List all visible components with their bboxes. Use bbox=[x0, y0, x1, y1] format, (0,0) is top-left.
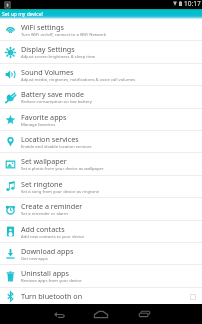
staticText: WiFi settings bbox=[21, 22, 64, 32]
staticText: Adjust media, ringtones, notifications &… bbox=[21, 77, 136, 83]
button[interactable]: Turn bluetooth on bbox=[0, 288, 202, 304]
button[interactable]: Location services bbox=[0, 131, 202, 153]
button[interactable]: Set up my device! bbox=[0, 9, 202, 19]
button[interactable]: Download apps bbox=[0, 243, 202, 265]
button[interactable]: Battery save mode bbox=[0, 86, 202, 109]
staticText: Download apps bbox=[21, 246, 74, 256]
staticText: Get new apps bbox=[21, 256, 48, 262]
staticText: Set ringtone bbox=[21, 179, 63, 189]
button[interactable]: Sound Volumes bbox=[0, 64, 202, 86]
staticText: Favorite apps bbox=[21, 112, 67, 122]
staticText: Location services bbox=[21, 134, 79, 144]
button[interactable]: Home bbox=[85, 304, 117, 324]
button[interactable]: Set wallpaper bbox=[0, 153, 202, 176]
staticText: Turn WiFi on/off, connect to a WiFi Netw… bbox=[21, 32, 107, 38]
staticText: Set a song from your device as ringtone bbox=[21, 189, 100, 195]
button[interactable]: Add contacts bbox=[0, 221, 202, 243]
button[interactable]: Uninstall apps bbox=[0, 265, 202, 288]
staticText: Reduce consumption on low battery bbox=[21, 99, 92, 105]
staticText: Create a reminder bbox=[21, 201, 83, 211]
staticText: Set a photo from your device as wallpape… bbox=[21, 166, 104, 172]
button[interactable]: Favorite apps bbox=[0, 109, 202, 131]
button[interactable]: Create a reminder bbox=[0, 198, 202, 221]
staticText: Set a reminder or alarm bbox=[21, 211, 68, 217]
button[interactable]: WiFi settings bbox=[0, 19, 202, 41]
button[interactable]: Back bbox=[43, 304, 75, 324]
staticText: Add new contacts to your device bbox=[21, 234, 85, 240]
staticText: Display Settings bbox=[21, 44, 75, 54]
staticText: Set up my device! bbox=[2, 11, 43, 18]
staticText: Remove apps from your device bbox=[21, 278, 82, 284]
staticText: Manage favorites bbox=[21, 122, 56, 128]
staticText: 10:17 bbox=[184, 0, 201, 8]
button[interactable]: Set ringtone bbox=[0, 176, 202, 198]
button[interactable]: Recent apps bbox=[128, 304, 160, 324]
staticText: Add contacts bbox=[21, 224, 65, 234]
button[interactable]: Display Settings bbox=[0, 41, 202, 64]
staticText: Enable and disable location services bbox=[21, 144, 92, 150]
staticText: Set wallpaper bbox=[21, 156, 67, 166]
staticText: Battery save mode bbox=[21, 89, 85, 99]
staticText: Sound Volumes bbox=[21, 67, 74, 77]
staticText: Uninstall apps bbox=[21, 268, 69, 278]
staticText: Adjust screen brightness & sleep time bbox=[21, 54, 96, 60]
staticText: Turn bluetooth on bbox=[21, 291, 83, 301]
